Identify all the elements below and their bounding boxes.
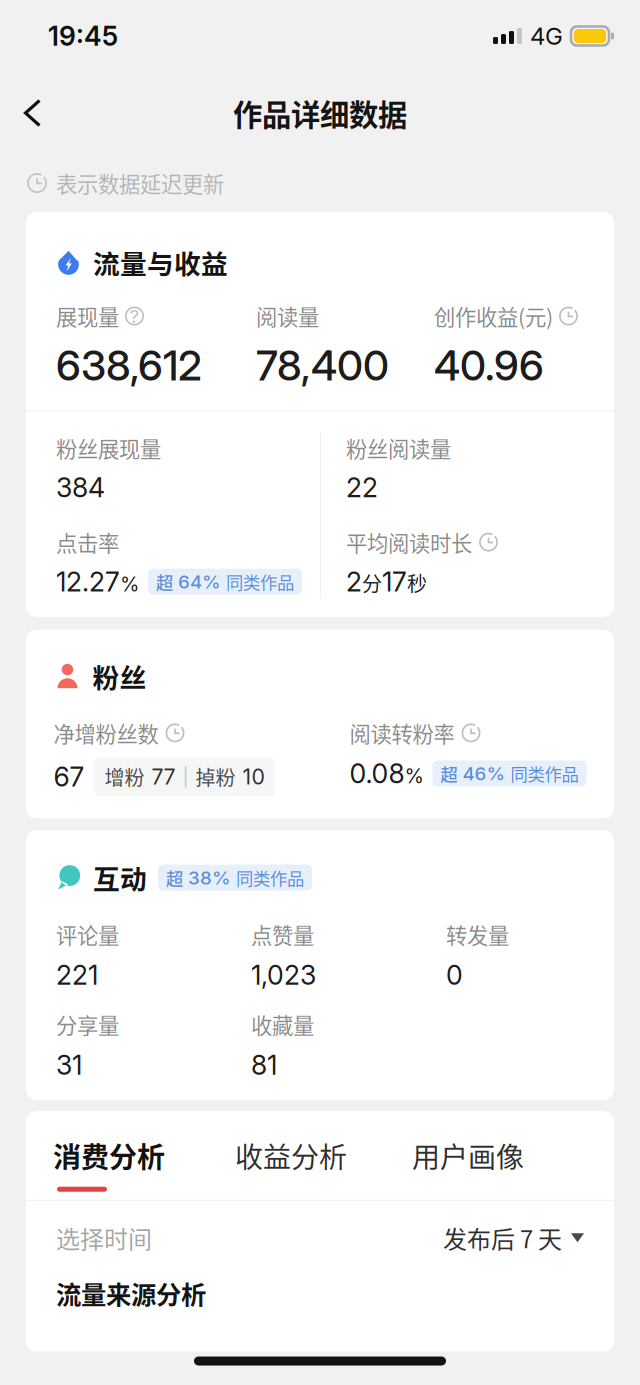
staticText: 展现量 — [56, 301, 119, 331]
staticText: 粉丝 — [92, 657, 146, 695]
staticText: 64% — [178, 570, 221, 593]
staticText: 67 — [53, 761, 84, 793]
staticText: 81 — [251, 1049, 277, 1081]
staticText: 流量来源分析 — [56, 1275, 206, 1311]
staticText: 阅读量 — [256, 301, 319, 331]
staticText: 消费分析 — [53, 1135, 165, 1176]
button[interactable]: 用户画像 — [412, 1135, 532, 1192]
staticText: 收益分析 — [235, 1135, 347, 1176]
staticText: 0 — [446, 959, 463, 991]
staticText: 收藏量 — [251, 1009, 314, 1040]
staticText: 78,400 — [256, 340, 389, 390]
staticText: 0.08 — [349, 757, 404, 790]
staticText: 同类作品 — [226, 569, 294, 594]
button[interactable]: 发布后 7 天 — [443, 1220, 584, 1255]
staticText: 1,023 — [251, 959, 316, 991]
staticText: 用户画像 — [412, 1135, 524, 1176]
staticText: % — [120, 572, 139, 596]
staticText: 超 — [156, 569, 173, 594]
staticText: 10 — [242, 764, 264, 790]
button[interactable]: 收益分析 — [235, 1135, 412, 1192]
staticText: 超 — [440, 761, 457, 786]
button[interactable]: Back — [0, 81, 60, 145]
staticText: 点击率 — [56, 527, 119, 558]
staticText: 选择时间 — [56, 1220, 152, 1255]
staticText: 384 — [56, 471, 105, 504]
staticText: 38% — [188, 866, 231, 889]
staticText: 2 — [346, 566, 362, 598]
staticText: 粉丝展现量 — [56, 432, 161, 463]
staticText: 流量与收益 — [93, 243, 228, 282]
staticText: 22 — [346, 471, 378, 504]
staticText: 作品详细数据 — [233, 92, 407, 134]
staticText: 创作收益(元) — [434, 301, 553, 331]
staticText: 同类作品 — [236, 865, 304, 890]
staticText: 12.27 — [56, 566, 120, 598]
staticText: 19:45 — [48, 20, 118, 52]
staticText: 40.96 — [434, 340, 544, 390]
staticText: 46% — [462, 762, 505, 785]
staticText: 平均阅读时长 — [346, 527, 472, 558]
staticText: 增粉 — [104, 762, 144, 791]
staticText: ? — [129, 305, 139, 327]
staticText: 阅读转粉率 — [349, 717, 454, 748]
staticText: % — [404, 764, 423, 788]
staticText: 分享量 — [56, 1009, 119, 1040]
button[interactable]: 消费分析 — [53, 1135, 235, 1192]
staticText: 评论量 — [56, 919, 119, 950]
staticText: 转发量 — [446, 919, 509, 950]
staticText: 221 — [56, 959, 98, 991]
staticText: 31 — [56, 1049, 82, 1081]
staticText: 分 — [362, 568, 382, 597]
staticText: 4G — [530, 21, 563, 50]
staticText: 点赞量 — [251, 919, 314, 950]
staticText: 粉丝阅读量 — [346, 432, 451, 463]
staticText: 17 — [382, 566, 407, 598]
staticText: 净增粉丝数 — [53, 717, 158, 748]
staticText: 秒 — [407, 568, 427, 597]
staticText: 638,612 — [56, 340, 202, 390]
staticText: 发布后 7 天 — [443, 1220, 562, 1255]
staticText: 77 — [151, 764, 175, 790]
staticText: 表示数据延迟更新 — [56, 168, 224, 198]
staticText: 互动 — [93, 858, 147, 897]
staticText: 超 — [166, 865, 183, 890]
staticText: 同类作品 — [510, 761, 578, 786]
staticText: 掉粉 — [195, 762, 235, 791]
staticText: | — [182, 765, 188, 788]
